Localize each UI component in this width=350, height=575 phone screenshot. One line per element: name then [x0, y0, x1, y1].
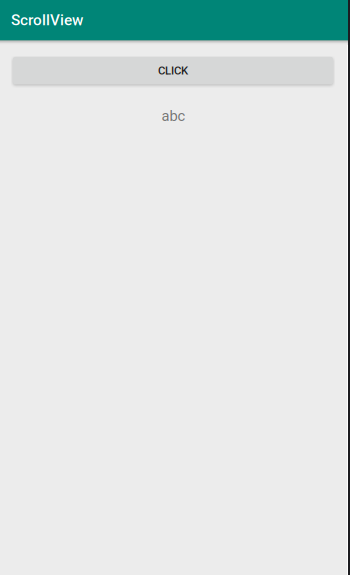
staticText: abc: [161, 107, 185, 125]
button[interactable]: CLICK: [13, 57, 333, 84]
staticText: CLICK: [158, 64, 188, 77]
staticText: ScrollView: [11, 11, 83, 29]
